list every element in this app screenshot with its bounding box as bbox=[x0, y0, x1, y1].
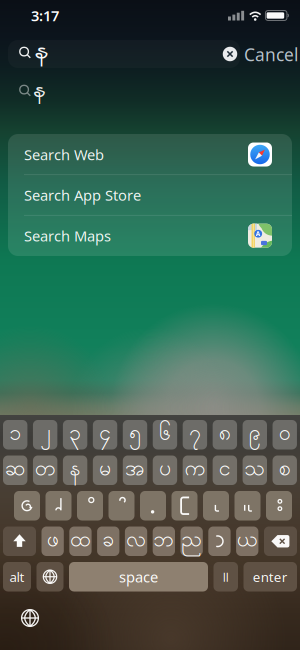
staticText: မ bbox=[99, 454, 111, 486]
button[interactable] bbox=[171, 491, 197, 520]
button[interactable]: င bbox=[213, 455, 237, 485]
button[interactable]: တ bbox=[33, 455, 57, 485]
staticText: ၆ bbox=[159, 419, 171, 450]
staticText: စ bbox=[279, 454, 291, 486]
staticText: ဘ bbox=[153, 525, 174, 557]
button[interactable]: သ bbox=[243, 455, 267, 485]
button[interactable] bbox=[108, 491, 134, 520]
staticText: ၃ bbox=[69, 419, 81, 450]
button[interactable] bbox=[45, 491, 71, 520]
button[interactable]: ၂ bbox=[33, 420, 57, 449]
staticText: ယ bbox=[237, 525, 258, 557]
button[interactable] bbox=[36, 562, 63, 591]
staticText: န bbox=[34, 78, 47, 104]
staticText: အ bbox=[125, 454, 145, 486]
button[interactable]: ၇ bbox=[183, 420, 207, 449]
staticText: ဆ bbox=[5, 454, 26, 486]
button[interactable] bbox=[223, 47, 237, 61]
button[interactable]: Search Maps bbox=[8, 215, 292, 256]
button[interactable] bbox=[3, 526, 36, 556]
button[interactable]: ခ bbox=[97, 526, 119, 556]
staticText: Cancel bbox=[244, 43, 298, 66]
button[interactable]: Search App Store bbox=[8, 175, 292, 215]
staticText: ။ bbox=[223, 562, 229, 591]
button[interactable]: စ bbox=[273, 455, 297, 485]
staticText: A bbox=[256, 229, 261, 238]
button[interactable]: န bbox=[63, 455, 87, 485]
staticText: ထ bbox=[70, 525, 91, 557]
staticText: ခ bbox=[102, 525, 114, 557]
staticText: ၁ bbox=[9, 419, 21, 450]
button[interactable]: ၆ bbox=[153, 420, 177, 449]
button[interactable] bbox=[264, 526, 297, 556]
staticText: alt bbox=[9, 568, 24, 586]
button[interactable]: အ bbox=[123, 455, 147, 485]
button[interactable] bbox=[10, 598, 50, 638]
button[interactable]: လ bbox=[125, 526, 147, 556]
staticText: Search Web bbox=[24, 145, 104, 164]
button[interactable]: ၈ bbox=[213, 420, 237, 449]
button[interactable]: ၃ bbox=[63, 420, 87, 449]
button[interactable]: ၀ bbox=[273, 420, 297, 449]
staticText: ၅ bbox=[129, 419, 141, 450]
button[interactable]: မ bbox=[93, 455, 117, 485]
staticText: န bbox=[35, 38, 49, 67]
staticText: န bbox=[70, 454, 81, 486]
staticText: space bbox=[119, 567, 158, 586]
staticText: ဖ bbox=[47, 525, 59, 557]
button[interactable] bbox=[14, 491, 40, 520]
button[interactable] bbox=[203, 491, 229, 520]
staticText: တ bbox=[35, 454, 56, 486]
staticText: Search App Store bbox=[24, 185, 141, 205]
button[interactable]: Search Web bbox=[8, 134, 292, 175]
button[interactable] bbox=[266, 491, 292, 520]
button[interactable] bbox=[77, 491, 103, 520]
button[interactable]: ထ bbox=[69, 526, 92, 556]
button[interactable] bbox=[234, 491, 260, 520]
staticText: ၉ bbox=[249, 419, 261, 450]
button[interactable]: ဘ bbox=[153, 526, 175, 556]
staticText: enter bbox=[253, 568, 288, 586]
button[interactable]: space bbox=[69, 562, 208, 591]
button[interactable]: ၁ bbox=[3, 420, 27, 449]
staticText: ပ bbox=[159, 454, 171, 486]
staticText: ၂ bbox=[40, 419, 50, 450]
staticText: ၀ bbox=[279, 419, 291, 450]
button[interactable]: ။ bbox=[213, 562, 238, 591]
staticText: ၇ bbox=[189, 419, 201, 450]
button[interactable]: န bbox=[8, 40, 240, 68]
button[interactable]: Cancel bbox=[240, 40, 300, 68]
staticText: င bbox=[219, 454, 231, 486]
staticText: 3:17 bbox=[31, 6, 59, 25]
staticText: က bbox=[184, 454, 205, 486]
button[interactable]: ၄ bbox=[93, 420, 117, 449]
button[interactable]: enter bbox=[243, 562, 297, 591]
button[interactable]: ည bbox=[180, 526, 203, 556]
button[interactable]: ပ bbox=[153, 455, 177, 485]
button[interactable]: က bbox=[183, 455, 207, 485]
button[interactable]: ဆ bbox=[3, 455, 27, 485]
button[interactable]: ၉ bbox=[243, 420, 267, 449]
button[interactable]: ဖ bbox=[41, 526, 64, 556]
button[interactable]: ၅ bbox=[123, 420, 147, 449]
button[interactable]: ယ bbox=[236, 526, 258, 556]
button[interactable] bbox=[140, 491, 166, 520]
staticText: ၄ bbox=[99, 419, 111, 450]
button[interactable]: န bbox=[0, 75, 300, 109]
staticText: ည bbox=[181, 525, 202, 557]
button[interactable] bbox=[208, 526, 231, 556]
button[interactable]: alt bbox=[3, 562, 31, 591]
staticText: သ bbox=[244, 454, 265, 486]
staticText: Search Maps bbox=[24, 226, 111, 245]
staticText: လ bbox=[126, 525, 146, 557]
staticText: ၈ bbox=[219, 419, 231, 450]
